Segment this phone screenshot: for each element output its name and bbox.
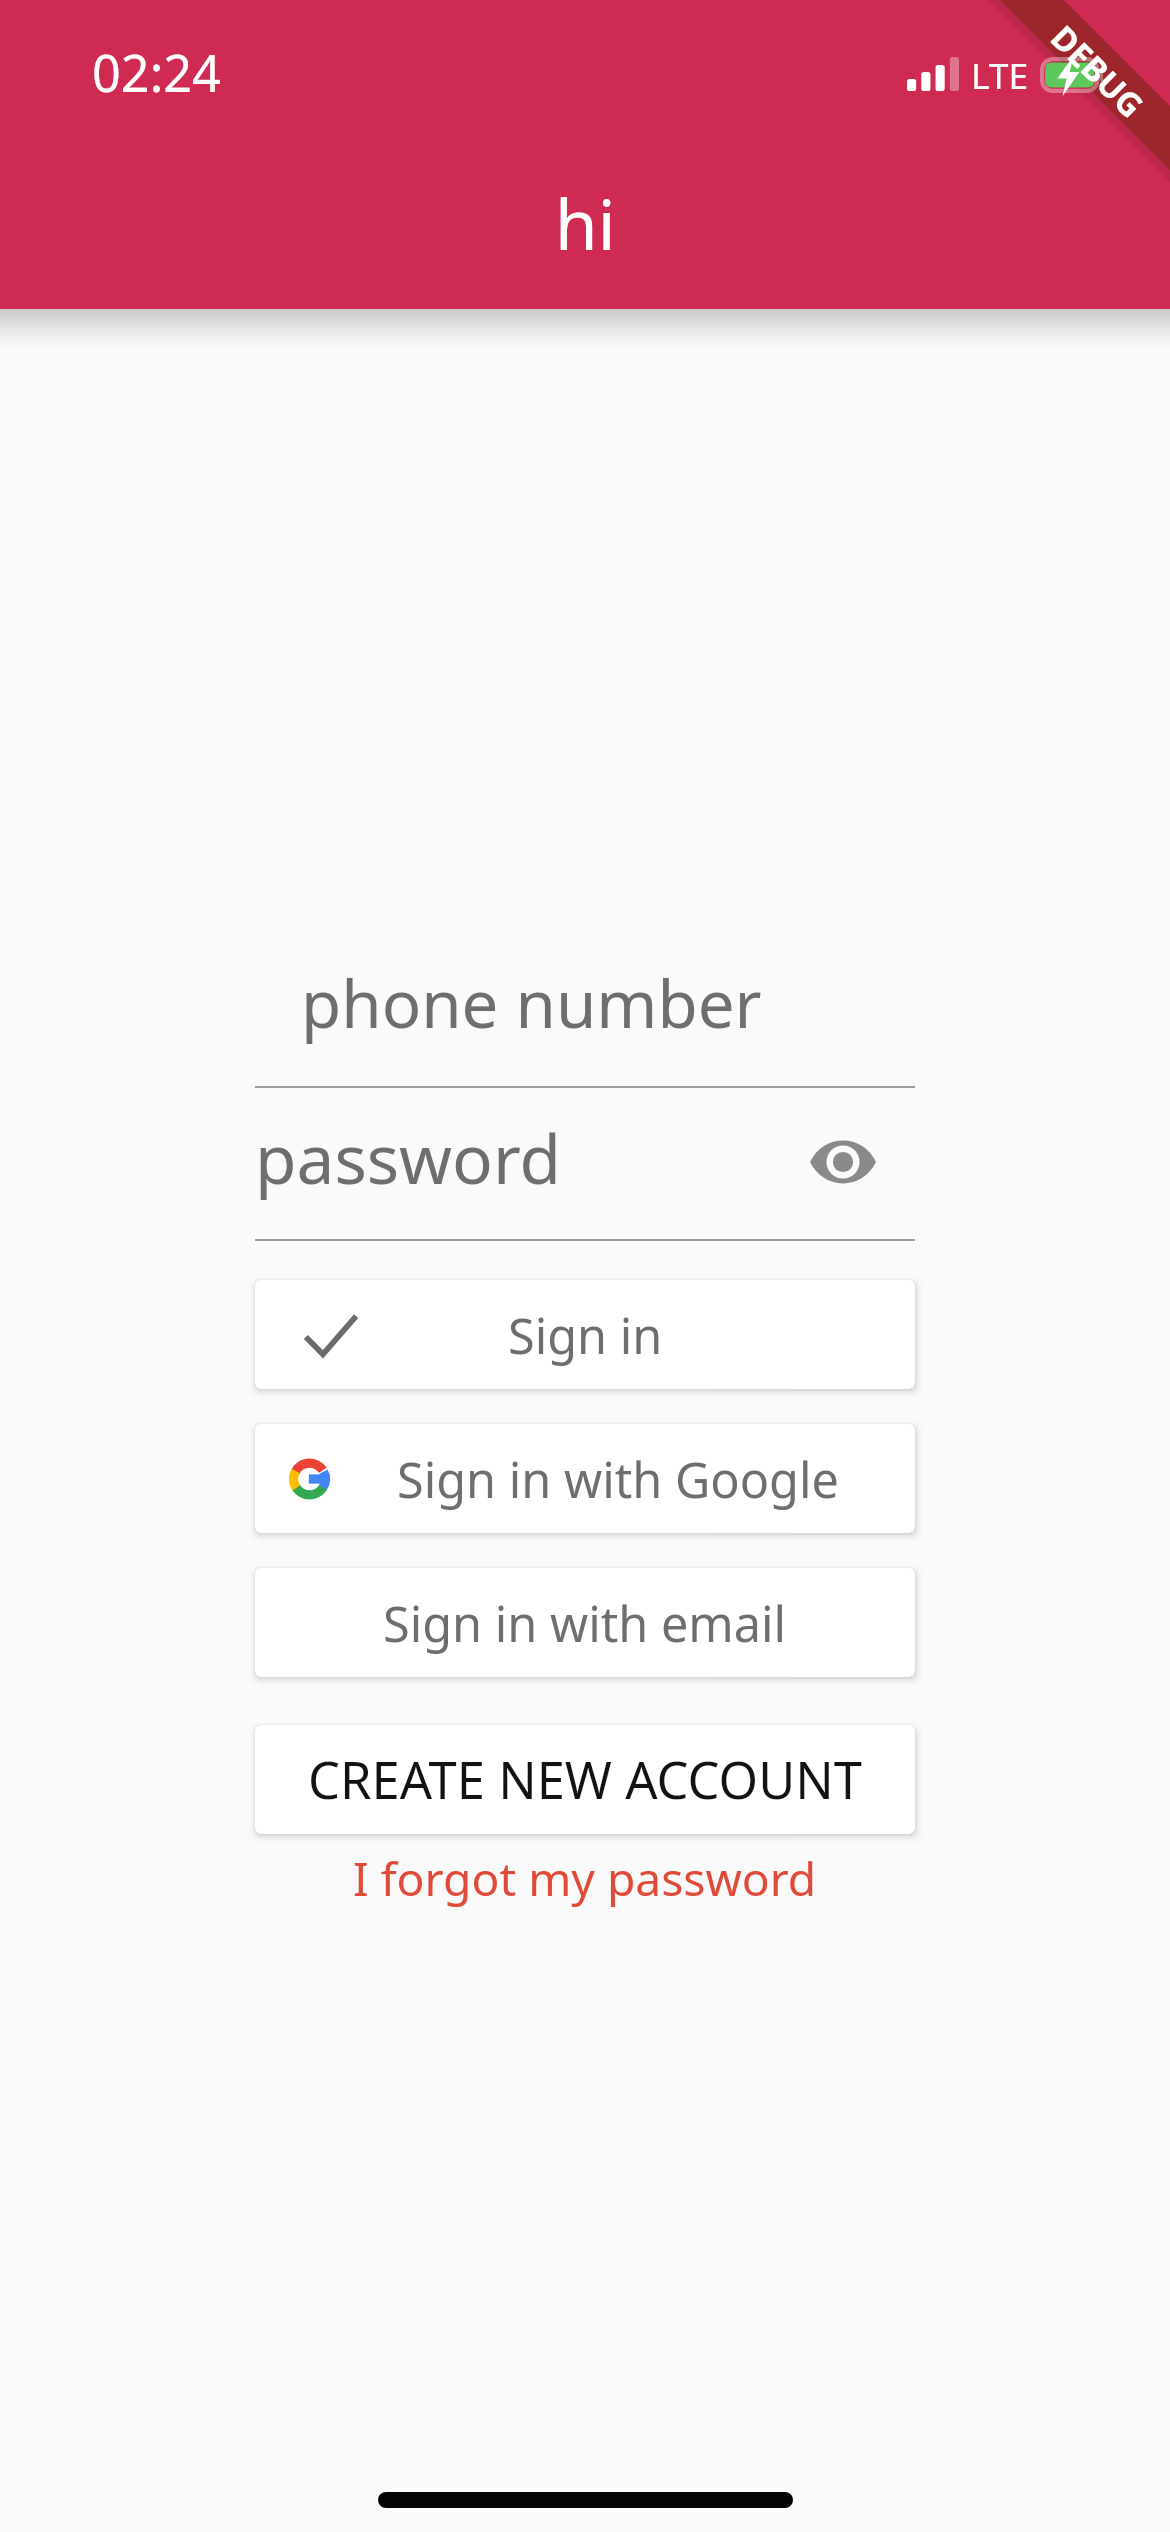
staticText: DEBUG (1041, 15, 1154, 127)
staticText: phone number (301, 958, 762, 1047)
staticText: hi (555, 176, 616, 270)
button[interactable]: Sign in with Google (255, 1424, 915, 1533)
staticText: Sign in with Google (397, 1446, 839, 1512)
button[interactable]: Show password (792, 1111, 894, 1213)
button[interactable]: Sign in (255, 1280, 915, 1389)
button[interactable]: CREATE NEW ACCOUNT (255, 1725, 915, 1834)
button[interactable]: I forgot my password (255, 1839, 915, 1917)
staticText: CREATE NEW ACCOUNT (308, 1745, 862, 1814)
button[interactable]: password (255, 1112, 813, 1204)
staticText: password (255, 1112, 561, 1204)
button[interactable]: phone number (255, 941, 915, 1063)
staticText: LTE (971, 51, 1029, 99)
staticText: I forgot my password (353, 1847, 817, 1910)
staticText: 02:24 (92, 38, 221, 107)
staticText: Sign in (508, 1302, 663, 1368)
button[interactable]: Sign in with email (255, 1568, 915, 1677)
staticText: Sign in with email (383, 1590, 787, 1656)
